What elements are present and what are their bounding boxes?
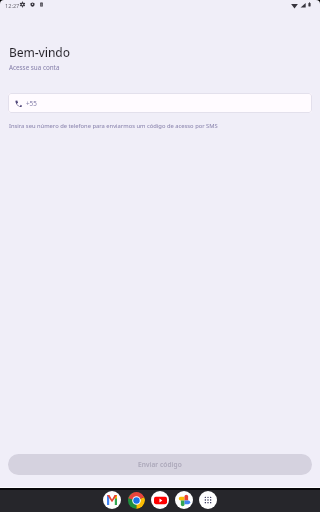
staticText: Enviar código [138, 460, 182, 469]
button[interactable]: Chrome [127, 491, 145, 509]
staticText: Bem-vindo [9, 44, 70, 60]
staticText: 12:27 [5, 2, 20, 10]
button[interactable]: +55 [8, 93, 312, 113]
staticText: Acesse sua conta [9, 63, 60, 72]
button[interactable]: Enviar código [8, 454, 312, 475]
staticText: +55 [26, 99, 37, 108]
staticText: Insira seu número de telefone para envia… [9, 122, 218, 130]
button[interactable]: Photos [175, 491, 193, 509]
button[interactable]: All apps [199, 491, 217, 509]
button[interactable]: YouTube [151, 491, 169, 509]
button[interactable]: Gmail [103, 491, 121, 509]
